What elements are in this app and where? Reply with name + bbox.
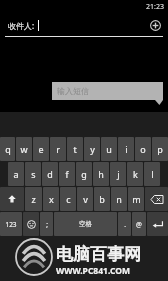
staticText: x <box>49 193 54 205</box>
staticText: 123 <box>5 220 17 229</box>
staticText: w <box>20 143 28 155</box>
button[interactable]: ; <box>40 212 53 236</box>
button[interactable]: j <box>110 162 126 186</box>
button[interactable]: d <box>42 162 58 186</box>
staticText: r <box>56 143 60 155</box>
button[interactable]: s <box>25 162 41 186</box>
button[interactable]: l <box>144 162 160 186</box>
button[interactable]: k <box>127 162 143 186</box>
button[interactable]: u <box>101 137 117 161</box>
staticText: p <box>157 143 163 155</box>
staticText: ; <box>46 220 48 229</box>
staticText: z <box>31 193 36 205</box>
staticText: WWW.PC841.COM <box>56 265 130 277</box>
button[interactable]: z <box>25 187 42 211</box>
staticText: j <box>117 168 120 180</box>
staticText: n <box>116 193 122 205</box>
button[interactable]: f <box>59 162 75 186</box>
button[interactable]: c <box>60 187 76 211</box>
staticText: 收件人: <box>8 20 35 31</box>
button[interactable]: e <box>33 137 49 161</box>
button[interactable]: del <box>145 187 168 211</box>
staticText: t <box>73 143 77 155</box>
button[interactable]: 空格 <box>54 212 117 236</box>
button[interactable]: m <box>128 187 144 211</box>
staticText: c <box>66 193 71 205</box>
button[interactable]: t <box>67 137 83 161</box>
staticText: s <box>31 168 36 180</box>
staticText: 输入短信 <box>57 86 89 96</box>
button[interactable]: x <box>43 187 59 211</box>
staticText: u <box>106 143 112 155</box>
button[interactable]: o <box>135 137 151 161</box>
staticText: a <box>13 168 19 180</box>
staticText: @ <box>136 220 142 229</box>
staticText: g <box>81 168 87 180</box>
button[interactable]: 收件人: <box>0 14 168 36</box>
button[interactable]: Add recipient <box>148 18 162 32</box>
staticText: h <box>98 168 104 180</box>
staticText: 21:23 <box>146 2 164 12</box>
button[interactable]: y <box>84 137 100 161</box>
button[interactable]: n <box>111 187 127 211</box>
button[interactable]: q <box>0 137 15 161</box>
button[interactable]: 输入短信 <box>52 82 163 100</box>
staticText: l <box>151 168 154 180</box>
staticText: y <box>90 143 95 155</box>
staticText: e <box>38 143 44 155</box>
button[interactable]: b <box>94 187 110 211</box>
button[interactable]: a <box>8 162 24 186</box>
staticText: o <box>140 143 146 155</box>
button[interactable]: shift <box>0 187 24 211</box>
button[interactable]: w <box>16 137 32 161</box>
button[interactable]: emoji <box>23 212 39 236</box>
staticText: i <box>125 143 128 155</box>
staticText: m <box>132 193 141 205</box>
staticText: 电脑百事网 <box>56 244 141 265</box>
button[interactable]: i <box>118 137 134 161</box>
button[interactable]: @ <box>132 212 146 236</box>
staticText: 空格 <box>79 220 92 228</box>
staticText: d <box>47 168 53 180</box>
staticText: f <box>65 168 69 180</box>
button[interactable]: . <box>118 212 131 236</box>
staticText: . <box>124 220 126 229</box>
staticText: k <box>133 168 138 180</box>
button[interactable]: r <box>50 137 66 161</box>
staticText: b <box>99 193 105 205</box>
button[interactable]: 123 <box>0 212 22 236</box>
button[interactable]: enter <box>147 212 168 236</box>
staticText: q <box>5 143 11 155</box>
button[interactable]: g <box>76 162 92 186</box>
staticText: v <box>83 193 88 205</box>
button[interactable]: p <box>152 137 168 161</box>
button[interactable]: h <box>93 162 109 186</box>
button[interactable]: v <box>77 187 93 211</box>
